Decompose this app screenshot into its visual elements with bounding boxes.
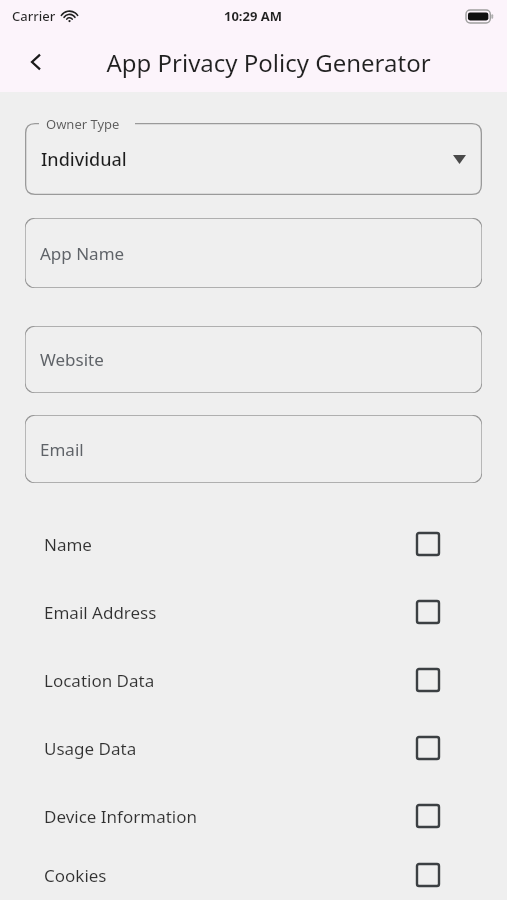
- staticText: 10:29 AM: [224, 7, 283, 25]
- staticText: Carrier: [12, 7, 56, 25]
- staticText: Name: [44, 533, 417, 556]
- button[interactable]: Name: [0, 510, 507, 578]
- button[interactable]: Website: [25, 326, 482, 393]
- staticText: Cookies: [44, 864, 417, 887]
- button[interactable]: Back: [14, 40, 58, 84]
- button[interactable]: Usage Data: [0, 714, 507, 782]
- staticText: App Name: [40, 242, 125, 265]
- staticText: Owner Type: [46, 115, 120, 133]
- button[interactable]: App Name: [25, 218, 482, 288]
- staticText: Device Information: [44, 805, 417, 828]
- staticText: App Privacy Policy Generator: [106, 46, 431, 79]
- button[interactable]: Individual: [25, 123, 482, 195]
- staticText: Usage Data: [44, 737, 417, 760]
- staticText: Individual: [41, 147, 127, 172]
- button[interactable]: Device Information: [0, 782, 507, 850]
- button[interactable]: Email Address: [0, 578, 507, 646]
- button[interactable]: Location Data: [0, 646, 507, 714]
- staticText: Email Address: [44, 601, 417, 624]
- staticText: Email: [40, 438, 84, 461]
- staticText: Location Data: [44, 669, 417, 692]
- staticText: Website: [40, 348, 104, 371]
- button[interactable]: Email: [25, 415, 482, 483]
- button[interactable]: Cookies: [0, 850, 507, 900]
